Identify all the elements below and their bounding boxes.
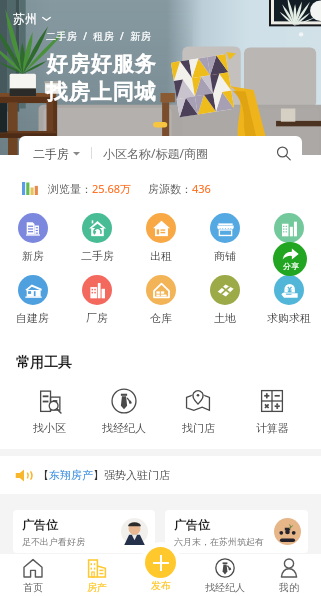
staticText: 【 bbox=[38, 468, 49, 482]
staticText: 首页 bbox=[23, 581, 43, 594]
staticText: 】强势入驻门店 bbox=[93, 468, 170, 482]
button[interactable]: 楼盘 bbox=[257, 213, 321, 264]
staticText: 好房好服务 bbox=[46, 51, 156, 77]
staticText: 找经纪人 bbox=[102, 421, 146, 435]
button[interactable]: 苏州 bbox=[13, 11, 51, 26]
staticText: 房产 bbox=[87, 581, 107, 594]
staticText: 东翔房产 bbox=[49, 468, 93, 482]
staticText: 足不出户看好房 bbox=[22, 536, 85, 547]
button[interactable]: 商铺 bbox=[193, 213, 257, 263]
staticText: 苏州 bbox=[13, 11, 37, 26]
staticText: 商铺 bbox=[214, 249, 236, 263]
button[interactable]: 首页 bbox=[0, 554, 65, 594]
button[interactable]: 找经纪人 bbox=[87, 388, 161, 435]
staticText: 找门店 bbox=[182, 421, 215, 435]
button[interactable]: 出租 bbox=[129, 213, 193, 263]
button[interactable]: 分享 bbox=[273, 242, 307, 276]
staticText: 二手房 / 租房 / 新房 bbox=[46, 29, 152, 43]
staticText: 找经纪人 bbox=[205, 581, 245, 594]
staticText: 新房 bbox=[22, 249, 44, 263]
button[interactable]: 二手房 bbox=[19, 136, 302, 170]
button[interactable]: 公告 bbox=[0, 456, 321, 494]
staticText: 25.68万 bbox=[92, 181, 132, 196]
button[interactable]: 新房 bbox=[0, 213, 65, 263]
button[interactable]: 发布 bbox=[145, 547, 176, 578]
staticText: 436 bbox=[192, 181, 211, 196]
staticText: 出租 bbox=[150, 249, 172, 263]
staticText: 分享 bbox=[283, 261, 299, 271]
other: 公告 bbox=[15, 468, 30, 483]
staticText: 我的 bbox=[279, 581, 299, 594]
staticText: 求购求租 bbox=[267, 311, 311, 325]
button[interactable]: 求购求租 bbox=[257, 275, 321, 325]
staticText: 自建房 bbox=[16, 311, 49, 325]
staticText: 广告位 bbox=[174, 517, 210, 532]
button[interactable]: 厂房 bbox=[65, 275, 129, 325]
staticText: 小区名称/标题/商圈 bbox=[103, 145, 208, 161]
staticText: 浏览量： bbox=[48, 182, 92, 196]
button[interactable]: 自建房 bbox=[0, 275, 65, 325]
staticText: 发布 bbox=[151, 579, 171, 592]
staticText: 厂房 bbox=[86, 311, 108, 325]
other: Search bbox=[276, 146, 291, 161]
staticText: 找小区 bbox=[33, 421, 66, 435]
staticText: 二手房 bbox=[81, 249, 114, 263]
button[interactable]: 广告位 bbox=[13, 510, 155, 553]
button[interactable]: 广告位 bbox=[165, 510, 308, 553]
button[interactable]: 仓库 bbox=[129, 275, 193, 325]
staticText: 六月末，在苏州筑起有 bbox=[174, 536, 264, 547]
staticText: 计算器 bbox=[256, 421, 289, 435]
staticText: 房源数： bbox=[148, 182, 192, 196]
button[interactable]: 房产 bbox=[65, 554, 129, 594]
staticText: 常用工具 bbox=[16, 354, 72, 372]
button[interactable]: 找经纪人 bbox=[193, 554, 257, 594]
staticText: 土地 bbox=[214, 311, 236, 325]
staticText: 找房上同城 bbox=[46, 79, 156, 105]
staticText: 仓库 bbox=[150, 311, 172, 325]
staticText: 二手房 bbox=[33, 146, 69, 161]
button[interactable]: 土地 bbox=[193, 275, 257, 325]
button[interactable]: 计算器 bbox=[235, 388, 309, 435]
button[interactable]: 找小区 bbox=[12, 388, 87, 435]
button[interactable]: 二手房 bbox=[65, 213, 129, 263]
button[interactable]: 我的 bbox=[257, 554, 321, 594]
staticText: 广告位 bbox=[22, 517, 58, 532]
button[interactable]: 找门店 bbox=[161, 388, 235, 435]
